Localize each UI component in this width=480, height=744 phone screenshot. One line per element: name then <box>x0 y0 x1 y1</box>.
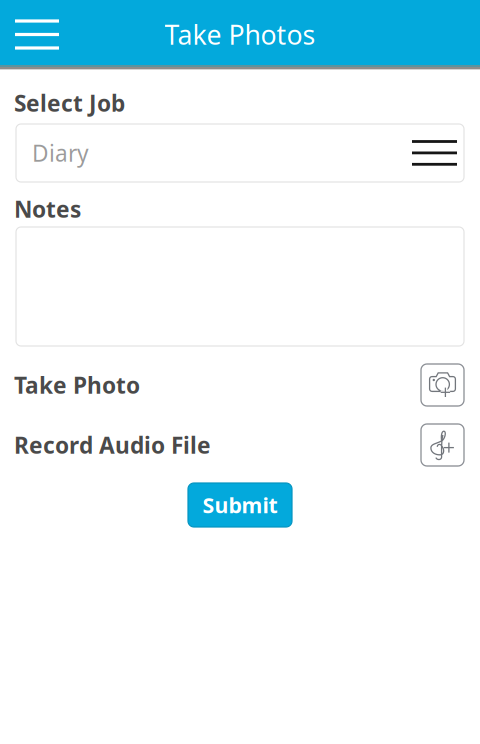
staticText: Diary <box>32 138 89 168</box>
staticText: Submit <box>202 491 277 519</box>
staticText: Select Job <box>14 88 125 118</box>
staticText: Take Photos <box>164 17 315 52</box>
staticText: Record Audio File <box>14 430 211 460</box>
button[interactable]: Take Photo <box>421 364 464 406</box>
staticText: Take Photo <box>14 370 140 400</box>
button[interactable]: Record Audio File <box>421 424 464 466</box>
staticText: Notes <box>14 194 81 224</box>
button[interactable]: Submit <box>188 483 292 527</box>
button[interactable]: Menu <box>0 0 74 65</box>
